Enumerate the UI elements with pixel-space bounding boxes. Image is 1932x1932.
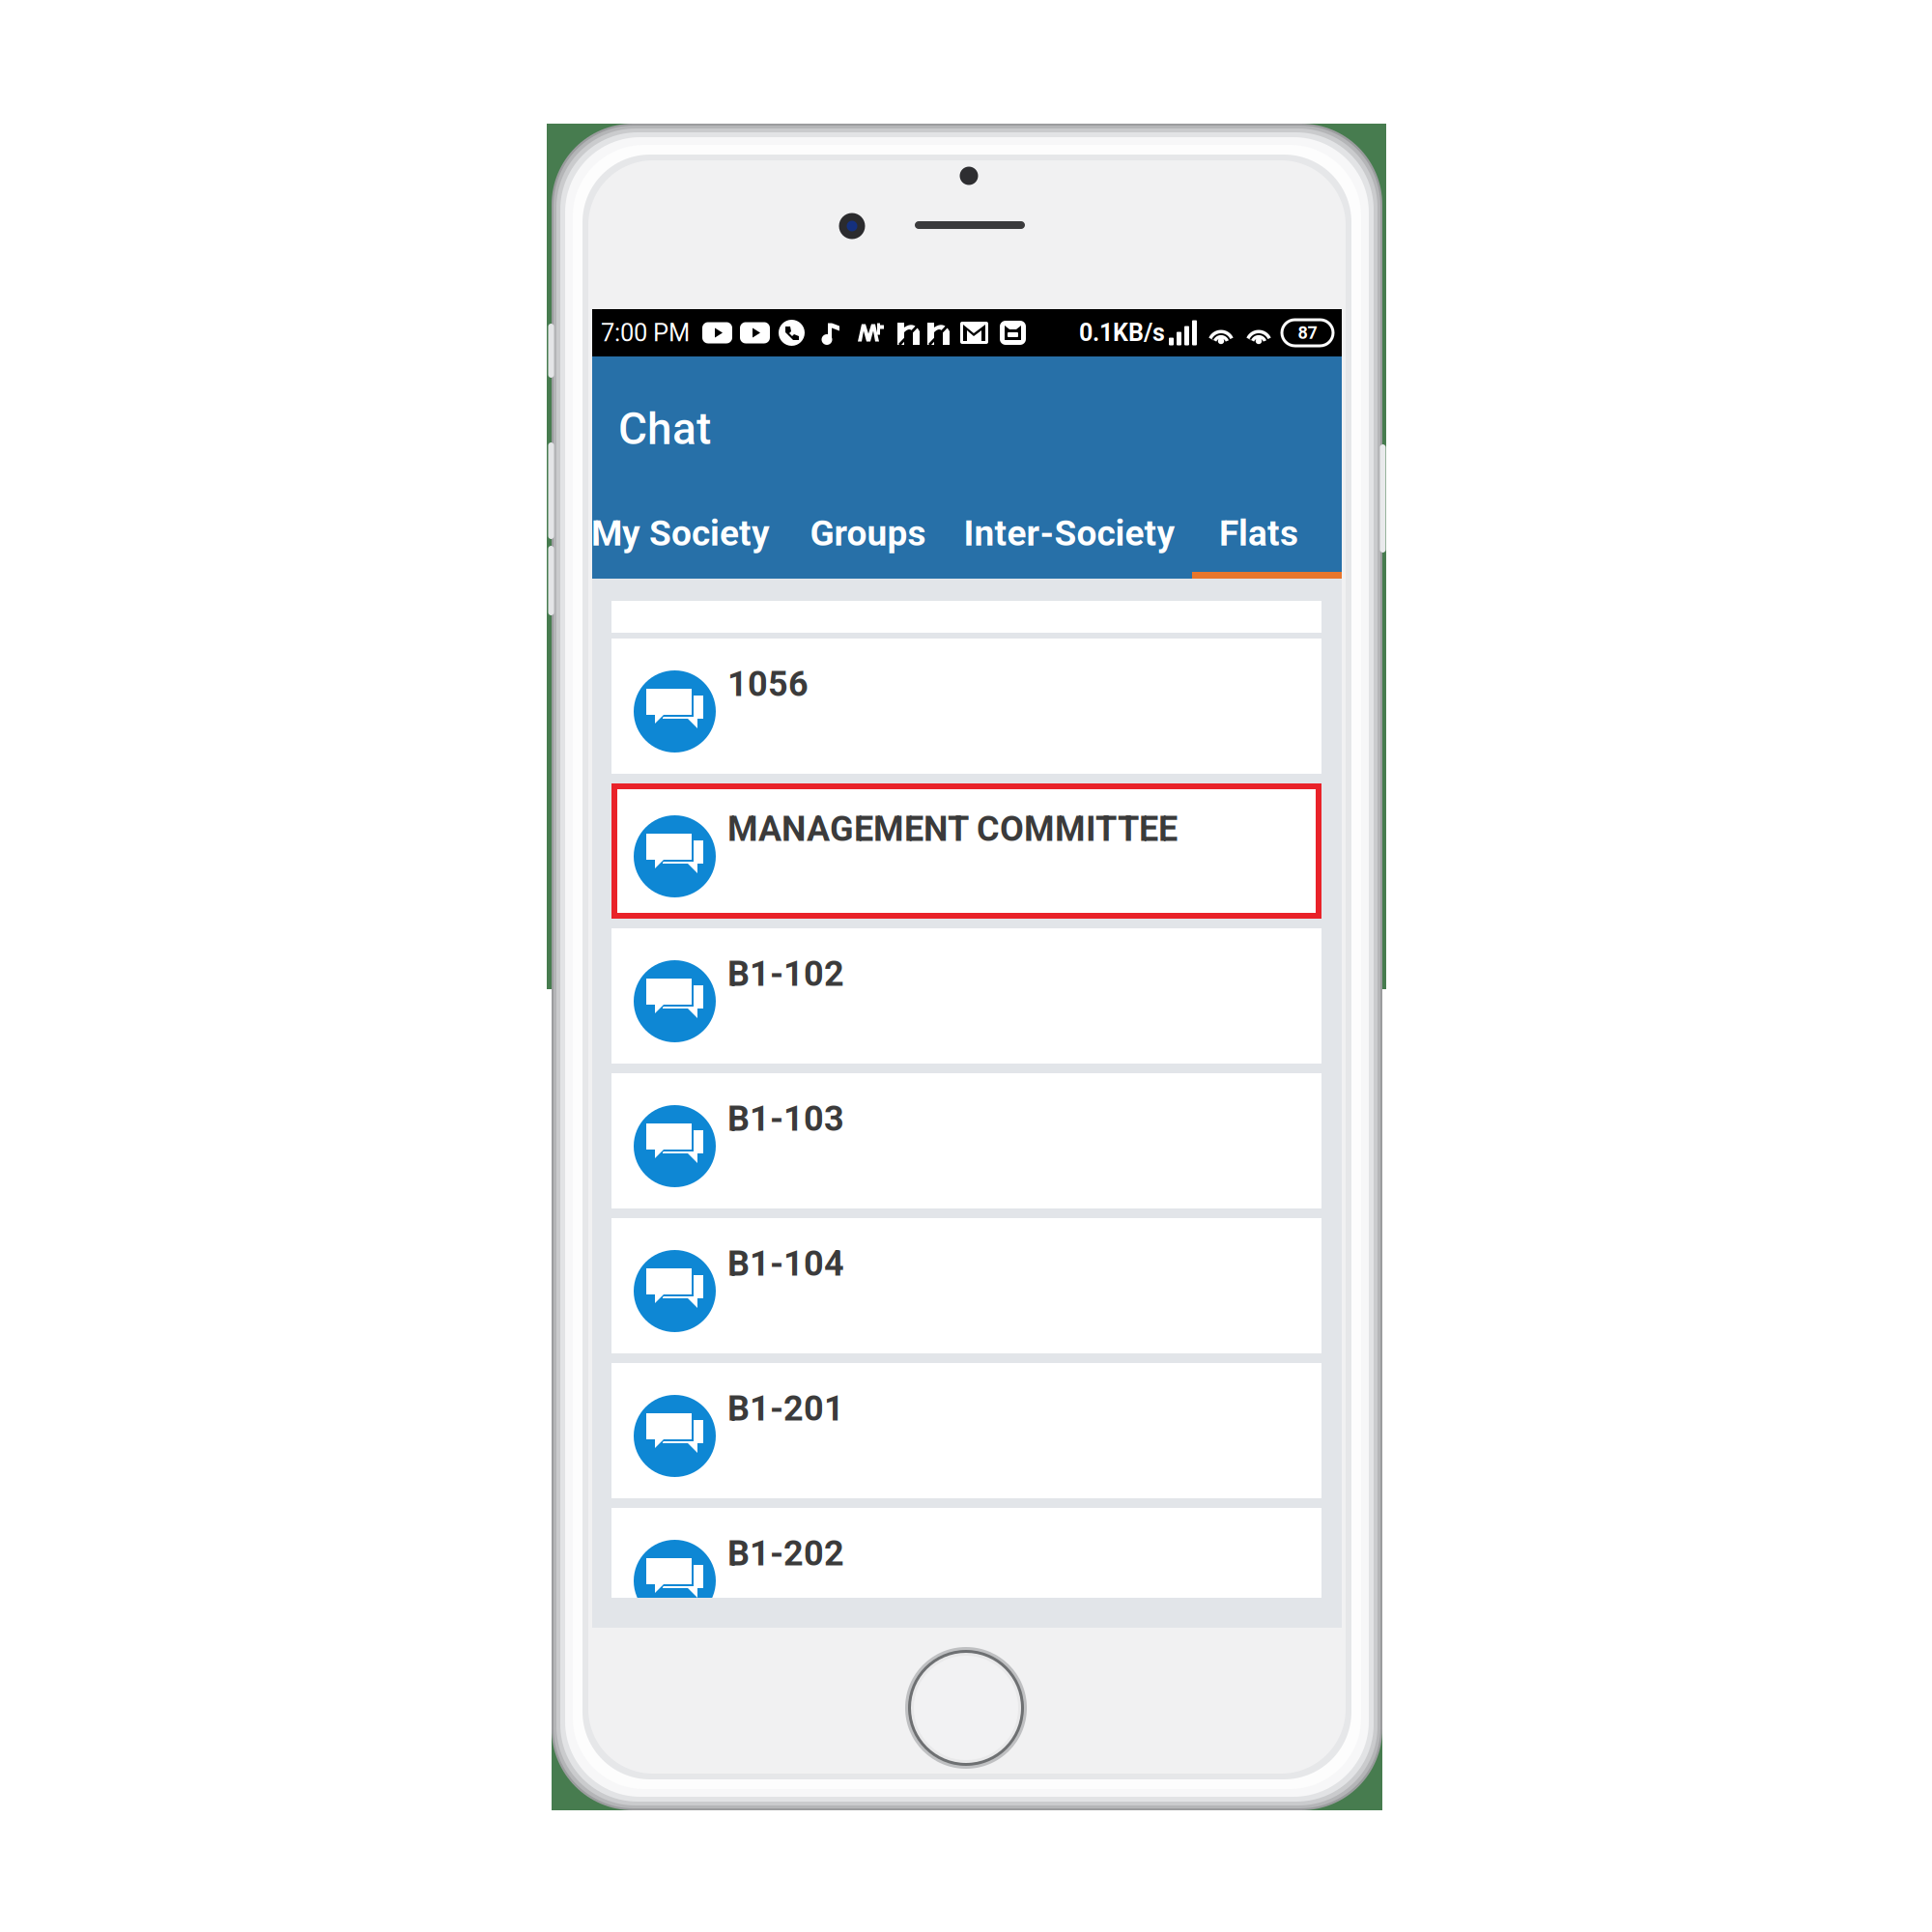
staticText: Groups [810,512,926,554]
staticText: 1056 [727,664,809,704]
button[interactable]: Inter-Society [950,487,1189,580]
staticText: My Society [591,512,770,554]
staticText: Chat [618,403,711,455]
button[interactable]: B1-202 [611,1508,1321,1643]
staticText: B1-103 [727,1098,844,1139]
staticText: B1-202 [727,1533,844,1574]
button[interactable]: MANAGEMENT COMMITTEE [611,783,1321,919]
button[interactable]: B1-104 [611,1218,1321,1353]
button[interactable]: Groups [796,487,939,580]
staticText: 87 [1298,323,1317,343]
staticText: Flats [1219,512,1298,554]
button[interactable]: My Society [578,487,783,580]
staticText: Inter-Society [964,512,1175,554]
staticText: B1-201 [727,1388,844,1429]
staticText: 0.1KB/s [1079,319,1165,347]
staticText: B1-104 [727,1243,844,1284]
button[interactable]: B1-201 [611,1363,1321,1498]
staticText: B1-102 [727,953,844,994]
staticText: MANAGEMENT COMMITTEE [727,809,1178,849]
staticText: 7:00 PM [601,318,690,347]
button[interactable]: B1-103 [611,1073,1321,1208]
button[interactable]: Flats [1206,487,1312,580]
button[interactable]: 1056 [611,639,1321,774]
button[interactable]: B1-102 [611,928,1321,1064]
button[interactable]: Home [903,1645,1029,1771]
